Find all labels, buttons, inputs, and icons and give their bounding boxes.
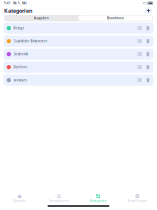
button[interactable]: Ausgaben bbox=[4, 16, 78, 21]
button[interactable]: Transaktionen bbox=[39, 193, 78, 204]
button[interactable]: Geschenke bbox=[3, 48, 153, 60]
button[interactable]: Delete Darlehen bbox=[142, 65, 150, 70]
staticText: Bezüge bbox=[13, 26, 24, 30]
staticText: Zusätzliche Einkommen bbox=[13, 39, 47, 43]
button[interactable]: Kategorien bbox=[78, 193, 118, 204]
staticText: Darlehen bbox=[13, 65, 27, 69]
staticText: Kategorien bbox=[4, 7, 32, 14]
button[interactable]: Edit Geschenke bbox=[137, 52, 142, 57]
button[interactable]: Bezüge bbox=[3, 22, 153, 34]
button[interactable]: Delete Bezüge bbox=[142, 26, 150, 31]
button[interactable]: Übersicht bbox=[0, 193, 39, 204]
button[interactable]: Delete Geschenke bbox=[142, 52, 150, 57]
staticText: Einnahmen bbox=[107, 16, 124, 20]
staticText: Sonstiges bbox=[13, 78, 26, 82]
button[interactable]: Delete Zusätzliche Einkommen bbox=[142, 39, 150, 44]
button[interactable]: Einnahmen bbox=[78, 16, 152, 21]
staticText: Geschenke bbox=[13, 52, 28, 56]
staticText: Transaktionen bbox=[49, 199, 69, 203]
button[interactable]: Edit Zusätzliche Einkommen bbox=[137, 39, 142, 44]
button[interactable]: Add category bbox=[144, 6, 153, 15]
button[interactable]: Sonstiges bbox=[3, 74, 153, 86]
button[interactable]: Einstellungen bbox=[118, 193, 157, 204]
staticText: Übersicht bbox=[13, 199, 26, 203]
staticText: 9:41 Mo 5. Mai bbox=[4, 1, 27, 5]
staticText: Ausgaben bbox=[34, 16, 49, 20]
button[interactable]: Edit Darlehen bbox=[137, 65, 142, 70]
staticText: Kategorien bbox=[90, 199, 107, 203]
button[interactable]: Zusätzliche Einkommen bbox=[3, 35, 153, 47]
button[interactable]: Delete Sonstiges bbox=[142, 78, 150, 83]
button[interactable]: Darlehen bbox=[3, 61, 153, 73]
button[interactable]: Edit Bezüge bbox=[137, 26, 142, 31]
staticText: Einstellungen bbox=[127, 199, 147, 203]
button[interactable]: Edit Sonstiges bbox=[137, 78, 142, 83]
